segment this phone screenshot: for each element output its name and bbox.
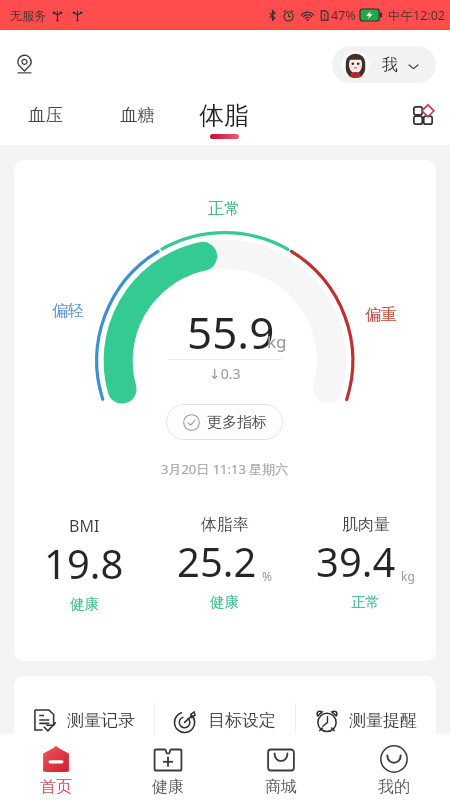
staticText: 首页 [40,777,72,797]
staticText: 血糖 [120,104,155,126]
staticText: 正常 [351,593,380,611]
staticText: 25.2 [177,534,257,588]
staticText: 体脂率 [201,515,249,535]
button[interactable]: 测量提醒 [296,676,436,764]
staticText: 47% [331,7,356,24]
staticText: 39.4 [316,534,396,588]
staticText: 肌肉量 [342,515,390,535]
button[interactable]: 目标设定 [155,676,295,764]
staticText: 中午12:02 [388,7,445,24]
staticText: kg [401,568,415,584]
button[interactable]: 测量记录 [14,676,154,764]
button[interactable]: Location [12,52,36,76]
button[interactable]: BMI [14,515,154,609]
button[interactable]: 肌肉量 [295,515,436,607]
staticText: 偏轻 [52,301,84,321]
staticText: 体脂 [199,100,249,131]
staticText: 测量记录 [67,710,135,731]
staticText: kg [267,330,287,353]
staticText: 55.9 [187,302,275,362]
staticText: 19.8 [44,536,124,590]
button[interactable]: 更多指标 [166,404,283,440]
button[interactable]: 血压 [10,90,80,142]
staticText: 目标设定 [208,710,276,731]
staticText: 我的 [378,777,410,797]
staticText: 3月20日 11:13 星期六 [161,460,289,478]
button[interactable]: 健康 [112,734,224,800]
staticText: BMI [69,515,100,537]
staticText: 无服务 [10,8,46,23]
button[interactable]: 血糖 [102,90,172,142]
staticText: 健康 [70,595,99,613]
staticText: 我 [382,55,398,75]
staticText: 偏重 [365,305,397,325]
button[interactable]: 首页 [0,734,112,800]
staticText: 测量提醒 [349,710,417,731]
staticText: ↓0.3 [209,364,241,383]
button[interactable]: All services [407,100,438,131]
button[interactable]: 我的 [337,734,450,800]
staticText: 更多指标 [207,413,267,432]
button[interactable]: 体脂 [189,90,259,142]
staticText: 血压 [28,104,63,126]
button[interactable]: 体脂率 [154,515,295,607]
staticText: 商城 [265,777,297,797]
staticText: 健康 [210,593,239,611]
button[interactable]: 商城 [224,734,337,800]
staticText: 正常 [208,199,240,219]
staticText: % [262,568,272,584]
button[interactable]: 我 [332,46,436,83]
staticText: 健康 [152,777,184,797]
